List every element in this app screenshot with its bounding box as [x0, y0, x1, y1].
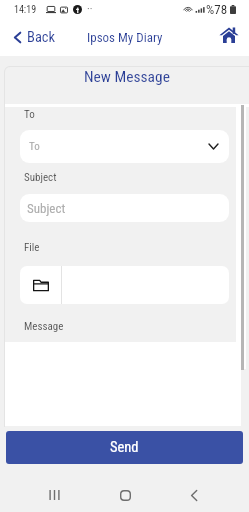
button[interactable]: Recents [34, 475, 74, 512]
button[interactable]: Subject [20, 194, 229, 222]
staticText: Subject [27, 201, 66, 216]
button[interactable]: Send [6, 431, 243, 464]
staticText: Send [110, 439, 139, 456]
staticText: To [29, 140, 40, 153]
staticText: Ipsos My Diary [87, 30, 163, 45]
button[interactable]: Back [174, 475, 214, 512]
staticText: Subject [24, 171, 57, 184]
button[interactable]: Home [209, 25, 249, 51]
staticText: ·· [87, 3, 93, 16]
staticText: Back [27, 29, 56, 46]
button[interactable]: To [20, 130, 229, 163]
staticText: New Message [84, 68, 170, 86]
button[interactable]: Choose file [20, 266, 229, 304]
staticText: 14:19 [14, 4, 37, 16]
staticText: To [24, 108, 35, 121]
button[interactable]: Back [0, 23, 66, 52]
button[interactable]: Home [105, 475, 145, 512]
staticText: Message [24, 320, 64, 333]
staticText: %78 [206, 2, 228, 17]
staticText: File [24, 241, 40, 254]
